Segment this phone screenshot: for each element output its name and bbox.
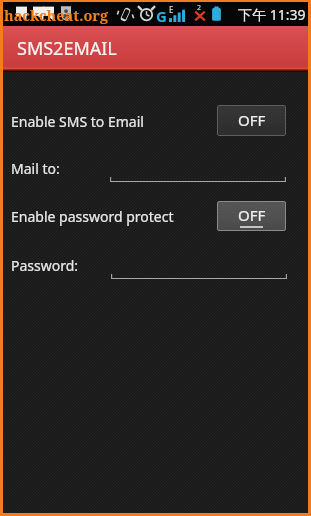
staticText: Password:: [11, 256, 79, 275]
staticText: Enable password protect: [11, 207, 174, 226]
staticText: 2: [197, 3, 202, 13]
button[interactable]: Mail to: [110, 161, 286, 183]
staticText: E: [169, 4, 174, 15]
button[interactable]: Enable password protect toggle, OFF: [217, 201, 286, 231]
button[interactable]: Enable SMS to Email toggle, OFF: [217, 105, 286, 136]
staticText: Mail to:: [11, 159, 60, 178]
staticText: 下午 11:39: [238, 5, 306, 24]
button[interactable]: Password: [111, 258, 287, 280]
staticText: Enable SMS to Email: [11, 112, 144, 131]
staticText: G: [156, 6, 167, 26]
staticText: OFF: [238, 205, 266, 225]
staticText: SMS2EMAIL: [17, 36, 117, 61]
staticText: hackcheat.org: [4, 5, 109, 25]
staticText: OFF: [238, 110, 266, 130]
